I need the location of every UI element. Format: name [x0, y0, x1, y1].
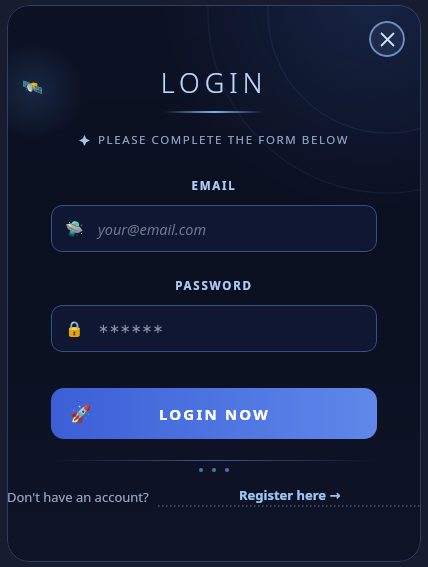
staticText: ∗∗∗∗∗∗	[98, 321, 164, 336]
button[interactable]: Close	[369, 21, 405, 57]
staticText: PASSWORD	[7, 278, 421, 294]
button[interactable]: Register here →	[158, 486, 421, 507]
staticText: 🛰️	[22, 77, 44, 97]
staticText: LOGIN NOW	[159, 404, 270, 424]
staticText: 🛸	[65, 220, 84, 238]
staticText: 🔒	[65, 320, 84, 338]
staticText: 🚀	[70, 404, 92, 424]
staticText: your@email.com	[98, 219, 207, 239]
staticText: LOGIN	[7, 64, 421, 101]
button[interactable]: LOGIN NOW	[51, 388, 377, 439]
staticText: Register here →	[239, 486, 341, 504]
button[interactable]: 🛸	[51, 205, 377, 252]
staticText: Don't have an account?	[7, 488, 149, 506]
staticText: EMAIL	[7, 178, 421, 194]
staticText: PLEASE COMPLETE THE FORM BELOW	[98, 132, 350, 148]
button[interactable]: 🔒	[51, 305, 377, 352]
